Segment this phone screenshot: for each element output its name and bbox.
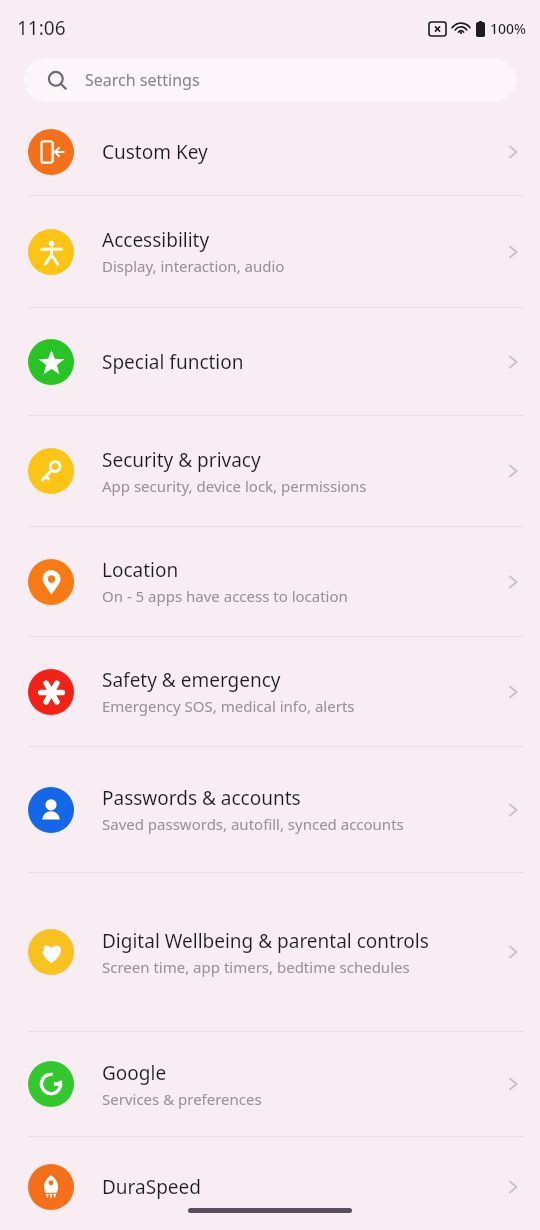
staticText: Passwords & accounts [102,785,301,811]
staticText: Display, interaction, audio [102,256,285,276]
button[interactable]: Digital Wellbeing & parental controls [0,873,540,1031]
staticText: 100% [490,19,526,38]
staticText: Safety & emergency [102,667,281,693]
button[interactable]: Safety & emergency [0,637,540,746]
staticText: 11:06 [17,15,66,41]
staticText: Screen time, app timers, bedtime schedul… [102,957,410,977]
staticText: App security, device lock, permissions [102,476,367,496]
button[interactable]: Custom Key [0,108,540,195]
button[interactable]: Location [0,527,540,636]
button[interactable]: Accessibility [0,196,540,307]
staticText: Digital Wellbeing & parental controls [102,928,429,954]
button[interactable]: Google [0,1032,540,1136]
staticText: Search settings [85,69,200,91]
staticText: Security & privacy [102,447,261,473]
staticText: Saved passwords, autofill, synced accoun… [102,814,404,834]
staticText: On - 5 apps have access to location [102,586,348,606]
button[interactable]: Special function [0,308,540,415]
staticText: Accessibility [102,227,210,253]
staticText: Custom Key [102,139,208,165]
staticText: Google [102,1060,167,1086]
button[interactable]: Security & privacy [0,416,540,526]
button[interactable]: DuraSpeed [0,1137,540,1230]
button[interactable]: Search settings [24,58,516,102]
staticText: Emergency SOS, medical info, alerts [102,696,355,716]
staticText: DuraSpeed [102,1174,201,1200]
staticText: Services & preferences [102,1089,262,1109]
staticText: Location [102,557,179,583]
staticText: Special function [102,349,244,375]
button[interactable]: Passwords & accounts [0,747,540,872]
